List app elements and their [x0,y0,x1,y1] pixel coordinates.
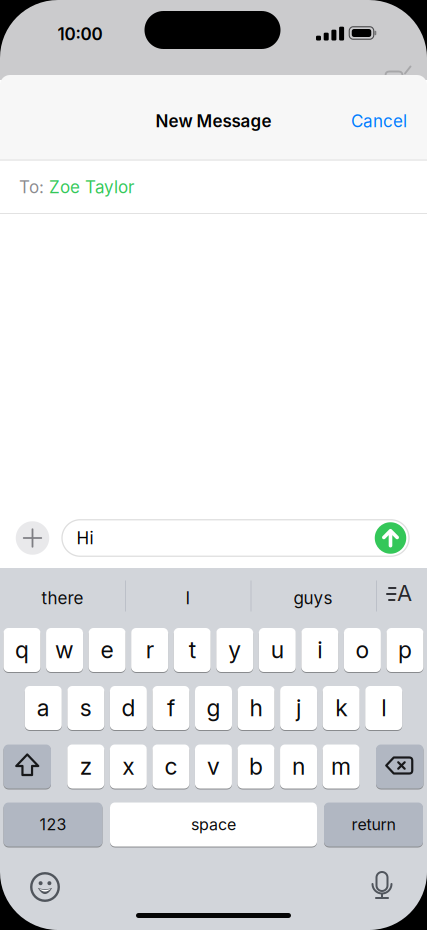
staticText: Zoe Taylor [49,177,134,197]
staticText: i [317,636,322,664]
button[interactable]: Add attachment [16,521,49,555]
button[interactable]: d [110,685,147,731]
button[interactable]: Predictive typing [383,581,417,611]
button[interactable]: s [67,685,104,731]
staticText: A [397,580,412,606]
button[interactable]: f [152,685,189,731]
button[interactable]: guys [258,576,368,620]
staticText: u [271,636,284,664]
button[interactable]: p [386,627,423,673]
button[interactable]: x [110,743,147,789]
button[interactable]: j [280,685,317,731]
button[interactable]: t [174,627,211,673]
button[interactable]: w [46,627,83,673]
staticText: c [164,753,177,780]
button[interactable]: n [280,743,317,789]
button[interactable]: Send [375,522,406,554]
staticText: 10:00 [57,24,102,44]
button[interactable]: z [67,743,104,789]
button[interactable]: k [323,685,360,731]
staticText: a [37,694,50,722]
staticText: b [249,753,263,780]
staticText: To: [19,177,44,197]
staticText: t [189,636,196,664]
staticText: l [381,694,386,722]
staticText: x [122,753,134,780]
button[interactable]: there [7,576,117,620]
button[interactable]: v [195,743,232,789]
button[interactable]: y [216,627,253,673]
staticText: there [41,588,83,608]
button[interactable]: h [238,685,275,731]
staticText: v [207,753,220,780]
button[interactable]: a [25,685,62,731]
button[interactable]: m [323,743,360,789]
staticText: r [146,636,154,664]
staticText: Hi [76,528,93,548]
button[interactable]: To: [0,161,427,213]
staticText: New Message [155,111,271,131]
button[interactable]: o [344,627,381,673]
staticText: n [292,753,305,780]
staticText: guys [293,588,332,608]
button[interactable]: space [110,801,317,847]
button[interactable]: c [152,743,189,789]
staticText: Cancel [351,111,407,131]
button[interactable]: Cancel [341,99,417,143]
button[interactable]: i [301,627,338,673]
staticText: return [351,815,395,834]
staticText: f [167,694,175,722]
button[interactable]: e [89,627,126,673]
staticText: j [296,694,301,722]
staticText: y [228,636,241,664]
staticText: o [355,636,369,664]
button[interactable]: q [3,627,40,673]
staticText: m [331,753,351,780]
staticText: k [335,694,347,722]
button[interactable]: g [195,685,232,731]
staticText: d [121,694,135,722]
staticText: 123 [39,815,66,834]
button[interactable]: 123 [3,801,102,847]
staticText: e [101,636,114,664]
staticText: g [206,694,220,722]
button[interactable]: l [365,685,402,731]
button[interactable]: Message [62,520,409,556]
button[interactable]: Delete [376,743,423,789]
staticText: q [15,636,29,664]
staticText: z [80,753,92,780]
staticText: p [398,636,412,664]
staticText: space [191,815,236,834]
button[interactable]: Shift [3,743,51,789]
button[interactable]: u [259,627,296,673]
button[interactable]: r [131,627,168,673]
button[interactable]: return [324,801,423,847]
button[interactable]: Dictation [367,871,397,901]
button[interactable]: b [237,743,274,789]
staticText: w [55,636,74,664]
button[interactable]: I [133,576,243,620]
staticText: I [185,588,190,608]
button[interactable]: Emoji [30,872,60,902]
staticText: s [80,694,92,722]
staticText: h [250,694,263,722]
